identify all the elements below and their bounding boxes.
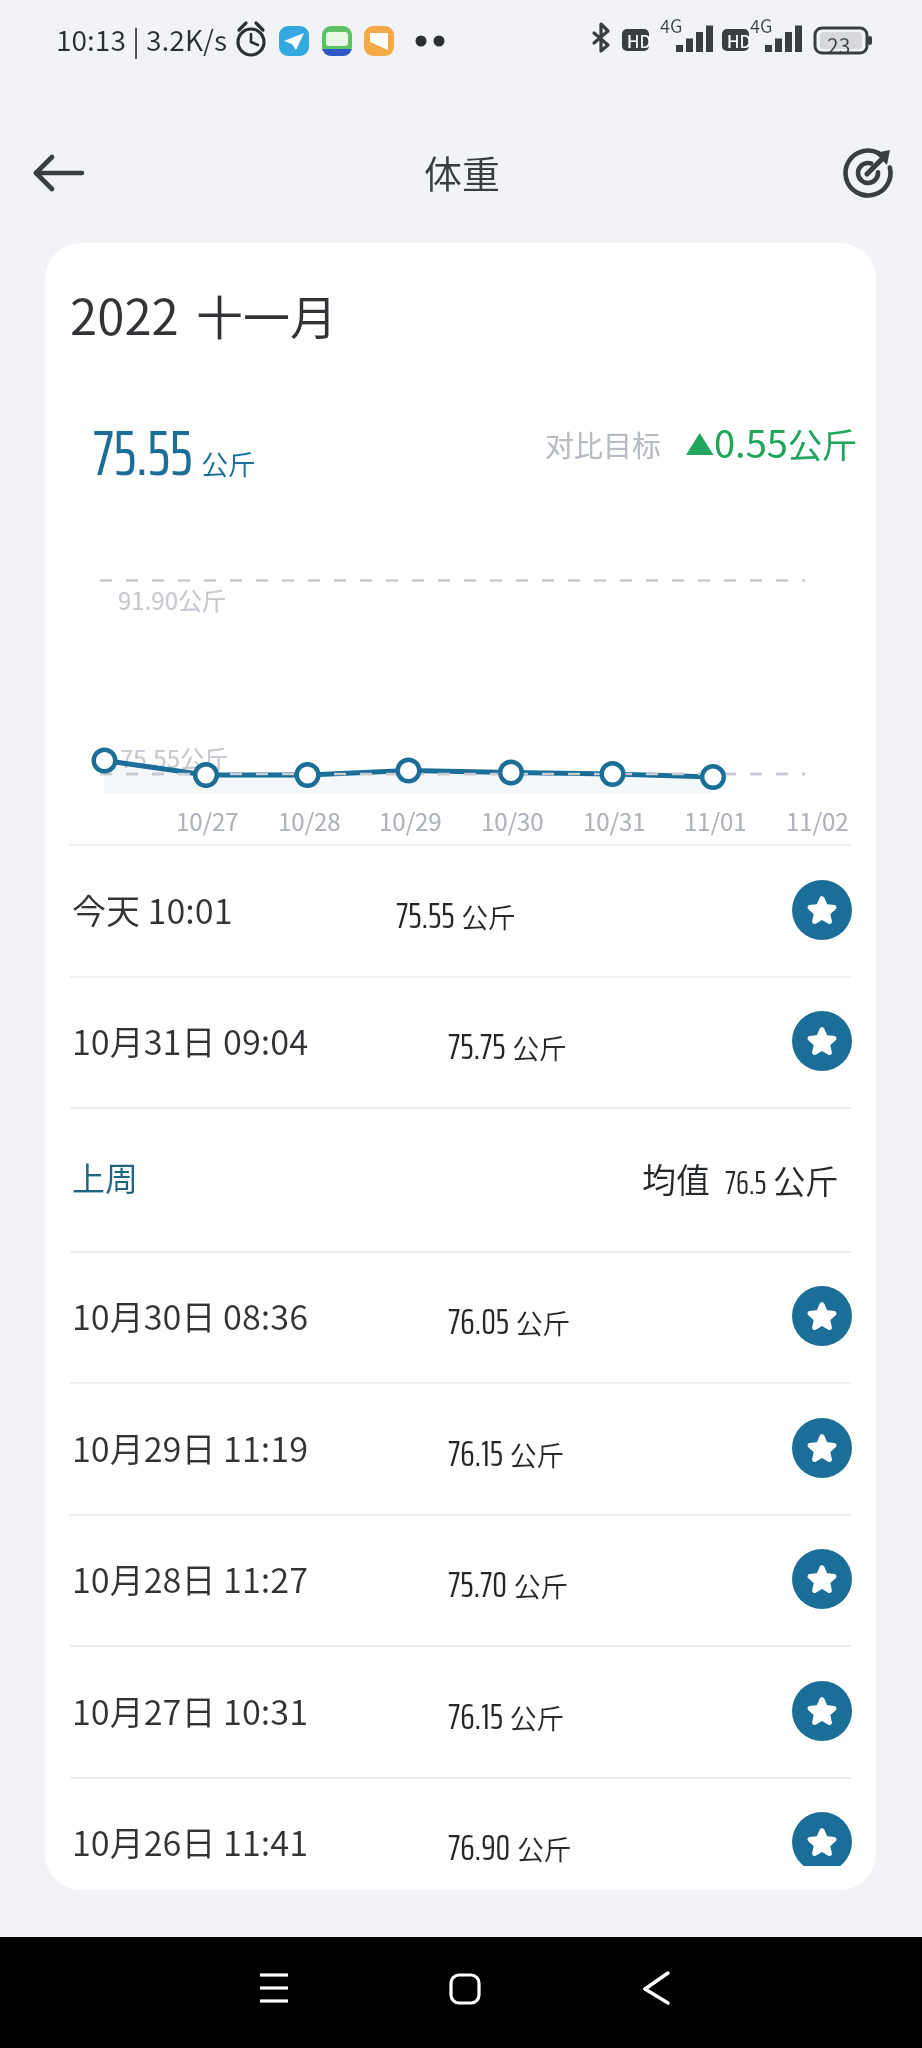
button[interactable] xyxy=(45,844,876,976)
staticText: 76.5 公斤 xyxy=(725,1156,839,1208)
button[interactable] xyxy=(45,1777,876,1866)
staticText: 75.55 公斤 xyxy=(396,886,516,944)
staticText: 75.55公斤 xyxy=(120,740,228,775)
staticText: 10月27日 10:31 xyxy=(72,1686,309,1735)
button[interactable] xyxy=(45,976,876,1108)
staticText: 10/30 xyxy=(481,803,544,838)
staticText: 2022 xyxy=(70,278,179,349)
button[interactable]: Recents xyxy=(245,1959,303,2017)
staticText: 23 xyxy=(827,30,851,60)
button[interactable]: Back xyxy=(628,1959,686,2017)
button[interactable]: Favourite xyxy=(792,1286,852,1346)
staticText: 4G xyxy=(660,12,683,38)
button[interactable] xyxy=(45,1645,876,1777)
staticText: 76.90 公斤 xyxy=(448,1818,571,1866)
staticText: 76.15 公斤 xyxy=(448,1424,564,1482)
staticText: 10/28 xyxy=(278,803,341,838)
staticText: 10月26日 11:41 xyxy=(72,1817,309,1866)
staticText: 上周 xyxy=(72,1153,138,1201)
button[interactable] xyxy=(45,1251,876,1383)
button[interactable]: Favourite xyxy=(792,880,852,940)
staticText: 10/27 xyxy=(176,803,239,838)
staticText: 76.05 公斤 xyxy=(448,1292,570,1350)
staticText: 75.55 公斤 xyxy=(93,403,256,502)
staticText: 0.55公斤 xyxy=(714,414,857,469)
button[interactable] xyxy=(45,1382,876,1514)
staticText: 11/01 xyxy=(684,803,747,838)
staticText: 10/29 xyxy=(379,803,442,838)
staticText: 4G xyxy=(750,12,773,38)
button[interactable]: Home xyxy=(436,1959,494,2017)
staticText: 均值 xyxy=(642,1154,710,1203)
staticText: 十一月 xyxy=(196,280,337,348)
button[interactable]: Set goal xyxy=(834,139,902,207)
staticText: 75.70 公斤 xyxy=(448,1555,568,1613)
staticText: 76.15 公斤 xyxy=(448,1687,564,1745)
button[interactable]: Favourite xyxy=(792,1418,852,1478)
staticText: 今天 10:01 xyxy=(72,885,233,934)
button[interactable]: Favourite xyxy=(792,1812,852,1866)
staticText: 91.90公斤 xyxy=(118,582,226,617)
button[interactable]: Favourite xyxy=(792,1681,852,1741)
button[interactable]: Favourite xyxy=(792,1549,852,1609)
staticText: 10月28日 11:27 xyxy=(72,1554,309,1603)
staticText: HD xyxy=(627,28,652,53)
button[interactable]: Back xyxy=(20,138,92,208)
staticText: 10月31日 09:04 xyxy=(72,1016,309,1065)
staticText: 对比目标 xyxy=(545,423,662,465)
staticText: 75.75 公斤 xyxy=(448,1017,567,1075)
staticText: 10:13 | 3.2K/s xyxy=(56,19,228,60)
button[interactable]: Favourite xyxy=(792,1011,852,1071)
button[interactable] xyxy=(45,1107,876,1251)
staticText: 10月30日 08:36 xyxy=(72,1291,309,1340)
staticText: 10月29日 11:19 xyxy=(72,1423,309,1472)
staticText: 10/31 xyxy=(583,803,646,838)
button[interactable] xyxy=(45,1514,876,1646)
staticText: 体重 xyxy=(424,144,501,199)
staticText: 11/02 xyxy=(786,803,849,838)
staticText: HD xyxy=(727,28,752,53)
